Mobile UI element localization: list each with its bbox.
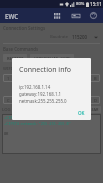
staticText: OK bbox=[78, 110, 85, 116]
staticText: WIFI bbox=[3, 66, 13, 72]
staticText: Connection info bbox=[19, 65, 72, 75]
staticText: netmask:255.255.255.0 bbox=[19, 98, 67, 104]
staticText: Connection Settings bbox=[3, 25, 46, 31]
staticText: Baudrate bbox=[50, 34, 69, 40]
staticText: gateway:192.168.1.1 bbox=[19, 91, 62, 97]
button[interactable]: B bbox=[90, 74, 100, 82]
staticText: CLEAR bbox=[87, 107, 99, 112]
button[interactable]: Modules bbox=[52, 10, 63, 21]
staticText: C bbox=[7, 98, 10, 103]
staticText: ip:192.168.1.14 bbox=[19, 84, 51, 90]
staticText: D bbox=[94, 98, 97, 103]
staticText: +CIPSTA:netmask:"255.255.255.0" bbox=[4, 121, 71, 126]
button[interactable]: Connection info bbox=[70, 10, 81, 21]
staticText: 1 bbox=[7, 76, 10, 81]
staticText: LOG bbox=[2, 107, 11, 113]
staticText: RESTART bbox=[7, 56, 24, 61]
button[interactable]: VERSION (AT+GMR) bbox=[30, 54, 74, 62]
button[interactable]: CLEAR bbox=[85, 106, 101, 113]
button[interactable]: C bbox=[3, 96, 13, 104]
button[interactable]: Help bbox=[88, 10, 99, 21]
staticText: 15:11 bbox=[90, 1, 102, 7]
staticText: VERSION (AT+GMR) bbox=[34, 56, 71, 61]
staticText: Base Commands bbox=[3, 46, 39, 52]
button[interactable]: RESTART bbox=[3, 54, 27, 62]
staticText: 115200 bbox=[72, 34, 88, 40]
button[interactable]: OK bbox=[76, 109, 87, 117]
staticText: +CIPSTA:gateway:"192.168.1.1" bbox=[4, 115, 67, 120]
staticText: B bbox=[94, 76, 97, 81]
staticText: 80% bbox=[76, 1, 85, 7]
staticText: OK bbox=[4, 131, 9, 136]
staticText: EWC bbox=[5, 12, 19, 20]
button[interactable]: 1 bbox=[3, 74, 13, 82]
button[interactable]: D bbox=[90, 96, 100, 104]
button[interactable]: 115200 bbox=[71, 34, 99, 40]
